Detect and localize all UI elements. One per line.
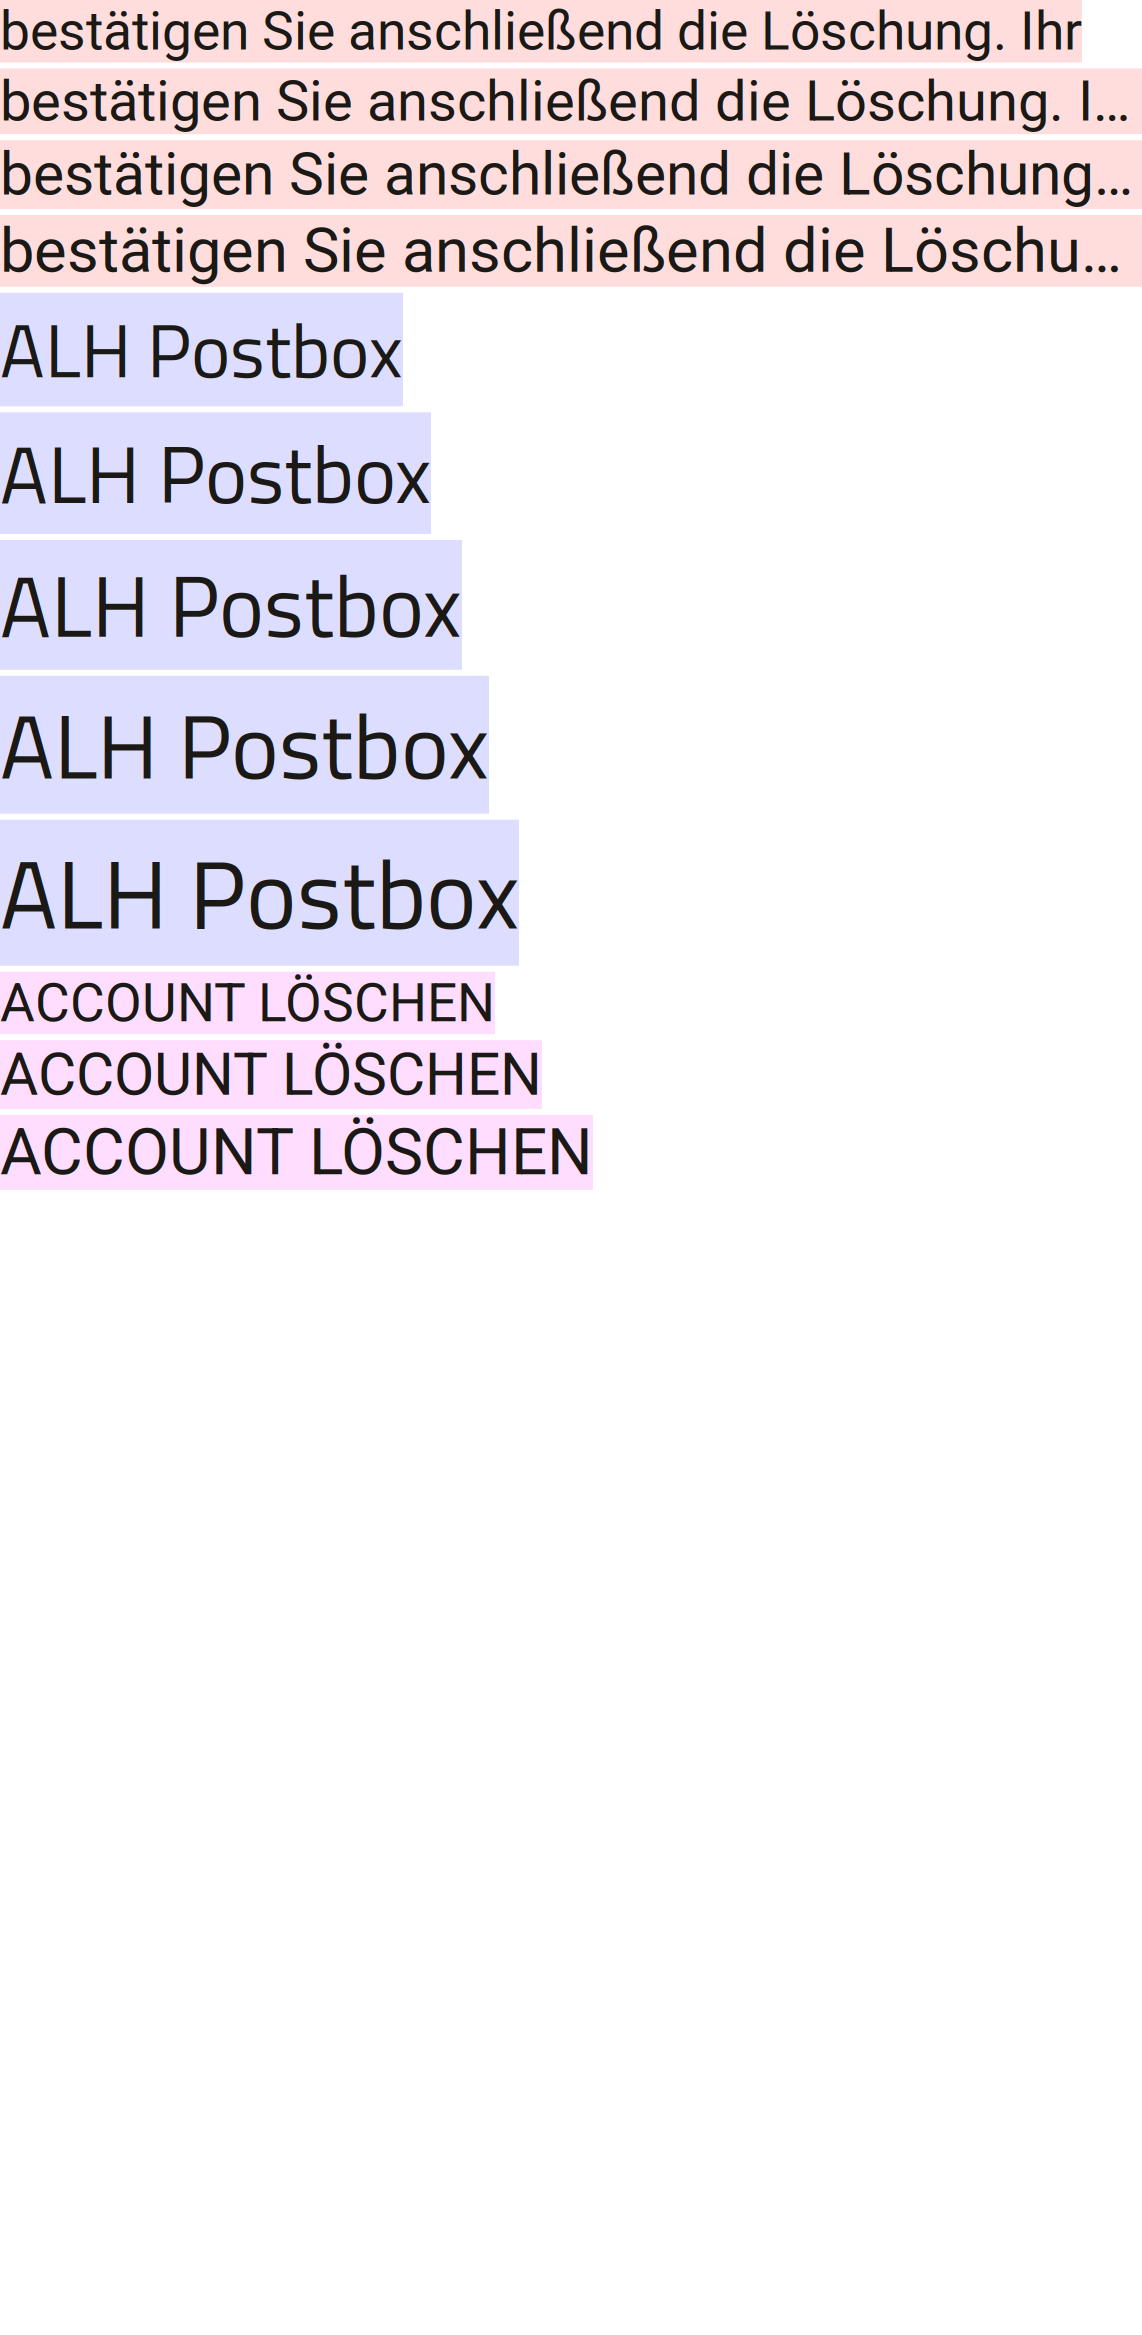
staticText: bestätigen Sie anschließend die Löschung…: [0, 68, 1142, 134]
staticText: bestätigen Sie anschließend die Löschung…: [0, 215, 1142, 287]
staticText: ALH Postbox: [0, 820, 519, 966]
staticText: ALH Postbox: [0, 412, 431, 534]
staticText: ACCOUNT LÖSCHEN: [0, 1040, 542, 1109]
staticText: ACCOUNT LÖSCHEN: [0, 972, 495, 1034]
staticText: ALH Postbox: [0, 293, 403, 406]
staticText: bestätigen Sie anschließend die Löschung…: [0, 0, 1082, 62]
staticText: bestätigen Sie anschließend die Löschung…: [0, 140, 1142, 209]
staticText: ALH Postbox: [0, 540, 462, 670]
staticText: ACCOUNT LÖSCHEN: [0, 1115, 593, 1190]
staticText: ALH Postbox: [0, 676, 489, 814]
